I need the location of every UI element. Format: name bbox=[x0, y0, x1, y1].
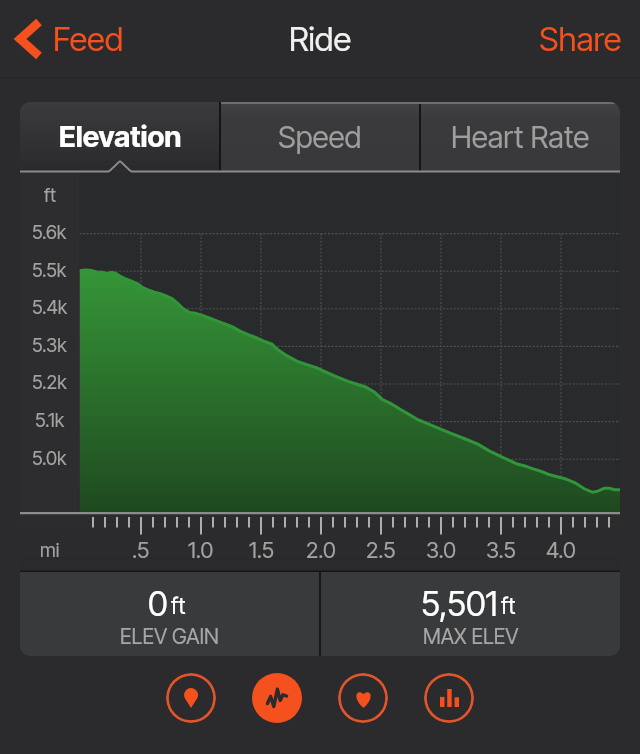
staticText: 2.0 bbox=[306, 537, 336, 564]
staticText: 5,501 bbox=[421, 583, 498, 624]
staticText: 3.5 bbox=[486, 537, 516, 564]
button[interactable]: Share bbox=[521, 11, 640, 67]
button[interactable]: Speed bbox=[220, 102, 420, 171]
button[interactable]: Feed bbox=[0, 10, 136, 68]
staticText: ft bbox=[171, 592, 186, 620]
staticText: 5.0k bbox=[32, 447, 67, 470]
button[interactable]: 5,501 bbox=[321, 572, 620, 656]
button[interactable]: Splits bbox=[424, 673, 474, 723]
staticText: Speed bbox=[278, 119, 362, 155]
staticText: Elevation bbox=[59, 119, 182, 154]
staticText: 0 bbox=[148, 583, 168, 624]
button[interactable]: Analysis bbox=[252, 673, 302, 723]
staticText: 1.5 bbox=[249, 537, 274, 564]
button[interactable]: Map bbox=[166, 673, 216, 723]
staticText: ELEV GAIN bbox=[120, 624, 219, 649]
button[interactable]: Heart Rate bbox=[420, 102, 620, 171]
staticText: .5 bbox=[132, 537, 150, 564]
staticText: 5.5k bbox=[32, 259, 67, 282]
staticText: 3.0 bbox=[426, 537, 456, 564]
button[interactable]: Heart rate bbox=[338, 673, 388, 723]
staticText: 4.0 bbox=[546, 537, 576, 564]
staticText: Ride bbox=[289, 19, 351, 59]
button[interactable]: 0 bbox=[20, 572, 319, 656]
staticText: 5.2k bbox=[32, 371, 67, 394]
staticText: 1.0 bbox=[188, 537, 214, 564]
staticText: ft bbox=[501, 592, 516, 620]
staticText: Feed bbox=[53, 19, 124, 59]
staticText: Heart Rate bbox=[451, 119, 590, 155]
staticText: 2.5 bbox=[366, 537, 396, 564]
staticText: 5.3k bbox=[32, 334, 67, 357]
staticText: MAX ELEV bbox=[423, 624, 519, 649]
staticText: ft bbox=[44, 184, 56, 207]
staticText: 5.1k bbox=[35, 409, 65, 432]
button[interactable]: Elevation bbox=[20, 102, 220, 171]
staticText: 5.6k bbox=[32, 221, 67, 244]
staticText: mi bbox=[40, 539, 60, 562]
staticText: 5.4k bbox=[32, 296, 68, 319]
staticText: Share bbox=[539, 19, 622, 59]
